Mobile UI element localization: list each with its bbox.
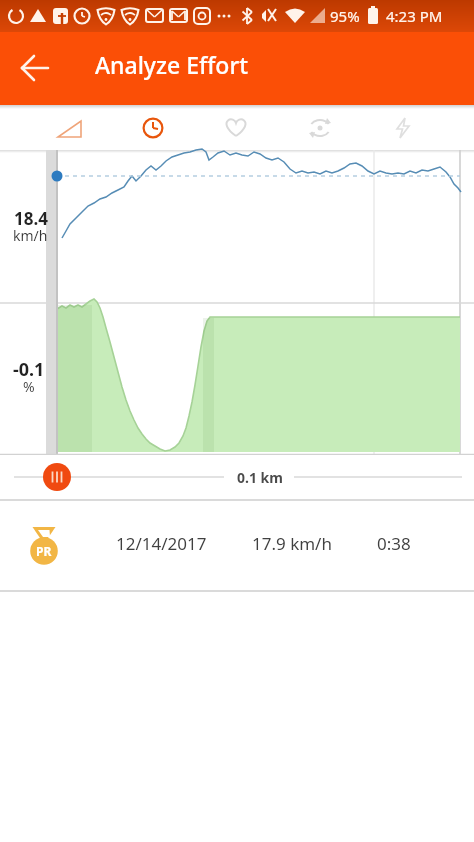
staticText: Analyze Effort — [95, 49, 248, 80]
staticText: -0.1 — [13, 357, 45, 382]
button[interactable]: 0.1 km — [0, 455, 474, 499]
button[interactable] — [278, 105, 362, 150]
staticText: 17.9 km/h — [252, 532, 332, 555]
button[interactable] — [28, 105, 111, 150]
staticText: 18.4 — [14, 207, 48, 230]
button[interactable] — [111, 105, 194, 150]
staticText: 0.1 km — [237, 468, 283, 487]
button[interactable] — [194, 105, 278, 150]
staticText: 0:38 — [377, 532, 411, 555]
staticText: 12/14/2017 — [116, 532, 207, 555]
button[interactable] — [12, 44, 60, 92]
button[interactable]: PR — [0, 501, 474, 590]
staticText: 95% — [330, 6, 360, 26]
staticText: PR — [36, 543, 52, 559]
staticText: % — [23, 377, 35, 396]
button[interactable] — [362, 105, 446, 150]
staticText: 4:23 PM — [386, 6, 443, 26]
staticText: km/h — [13, 226, 48, 245]
